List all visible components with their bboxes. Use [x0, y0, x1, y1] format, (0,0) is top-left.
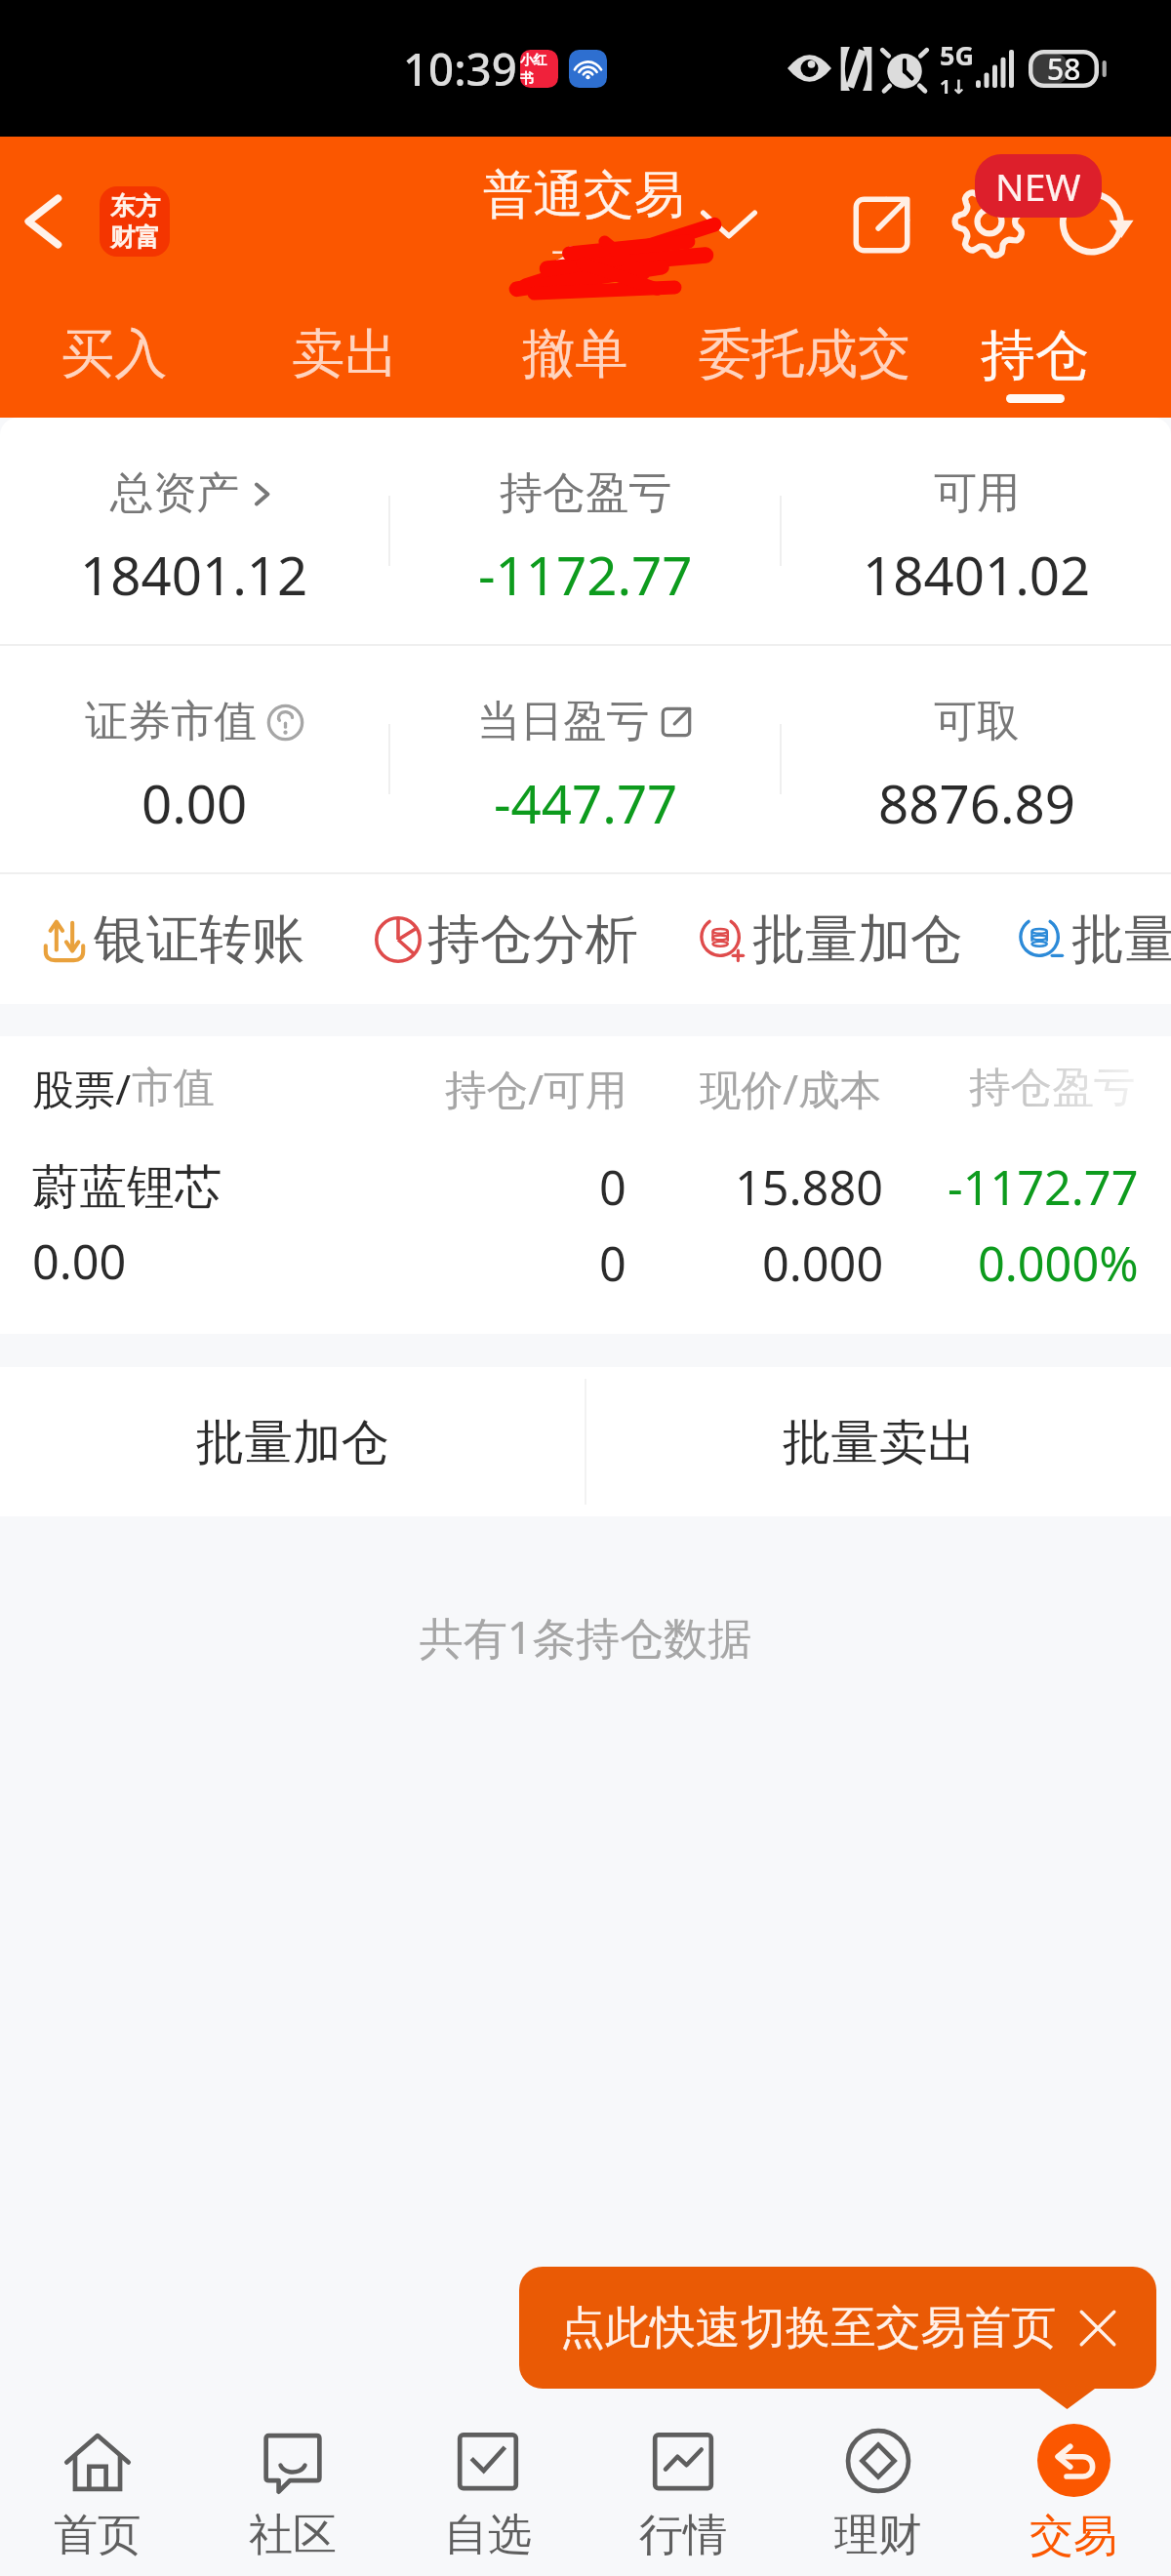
button[interactable]: 首页 [0, 2412, 195, 2576]
staticText: 首页 [54, 2508, 141, 2563]
staticText: 15.880 [735, 1154, 884, 1219]
button[interactable]: 证券市值 [0, 646, 388, 872]
staticText: 持仓分析 [427, 906, 638, 973]
button[interactable]: 批量卖出 [586, 1367, 1171, 1516]
button[interactable]: Open in new window [828, 172, 934, 277]
staticText: 东方 [110, 190, 160, 221]
staticText: 股票/ [32, 1060, 132, 1116]
staticText: 当日盈亏 [477, 695, 650, 749]
button[interactable]: 买入 [0, 321, 229, 421]
staticText: 批量卖出 [783, 1412, 976, 1472]
button[interactable]: 撤单 [460, 321, 690, 421]
button[interactable]: 批量加仓 [0, 1367, 585, 1516]
staticText: 0 [599, 1230, 626, 1295]
staticText: 财富 [110, 221, 160, 253]
button[interactable]: 批量加仓 [700, 906, 963, 973]
button[interactable]: East Money logo [100, 186, 170, 257]
staticText: 18401.02 [863, 539, 1091, 611]
staticText: 8876.89 [878, 767, 1075, 839]
button[interactable]: 持仓分析 [375, 906, 638, 973]
staticText: 普通交易 [483, 163, 685, 226]
button[interactable]: 社区 [195, 2412, 390, 2576]
staticText: 点此快速切换至交易首页 [560, 2300, 1057, 2356]
staticText: 10:39 [403, 38, 517, 99]
button[interactable]: Settings [937, 169, 1042, 274]
staticText: 0 [599, 1154, 626, 1219]
staticText: 5G [940, 37, 974, 73]
staticText: 行情 [639, 2508, 727, 2563]
button[interactable]: 持仓 [920, 321, 1151, 421]
staticText: 持仓 [981, 321, 1090, 389]
staticText: 李4 [550, 235, 618, 293]
staticText: 可取 [934, 695, 1021, 749]
staticText: 0.000% [978, 1230, 1139, 1295]
staticText: -1172.77 [948, 1154, 1139, 1219]
staticText: 共有1条持仓数据 [0, 1607, 1171, 1667]
staticText: 理财 [834, 2508, 922, 2563]
staticText: 买入 [61, 321, 168, 387]
button[interactable]: 普通交易 [483, 163, 685, 293]
staticText: 0.00 [141, 767, 248, 839]
staticText: 社区 [249, 2508, 337, 2563]
staticText: 小红书 [520, 52, 558, 87]
button[interactable]: 持仓盈亏 [390, 418, 780, 644]
staticText: 58 [1047, 49, 1081, 89]
staticText: 撤单 [522, 321, 628, 387]
staticText: 卖出 [292, 321, 398, 387]
staticText: 持仓盈亏 [969, 1062, 1136, 1114]
staticText: 市值 [132, 1062, 216, 1114]
button[interactable]: 可取 [782, 646, 1171, 872]
staticText: -447.77 [494, 767, 678, 839]
staticText: 证券市值 [85, 695, 258, 749]
button[interactable]: 批量加仓 [1019, 906, 1171, 973]
staticText: 0.000 [762, 1230, 884, 1295]
staticText: -1172.77 [478, 539, 693, 611]
staticText: 批量加仓 [1071, 906, 1171, 973]
staticText: 批量加仓 [752, 906, 963, 973]
staticText: 委托成交 [699, 321, 911, 387]
button[interactable]: 蔚蓝锂芯 [0, 1139, 1171, 1310]
button[interactable]: 理财 [781, 2412, 976, 2576]
other: Close tip [1077, 2308, 1118, 2349]
button[interactable]: 自选 [390, 2412, 585, 2576]
button[interactable]: 卖出 [229, 321, 460, 421]
button[interactable]: 当日盈亏 [390, 646, 780, 872]
button[interactable]: 行情 [585, 2412, 781, 2576]
staticText: 持仓盈亏 [500, 466, 672, 521]
staticText: 自选 [444, 2508, 532, 2563]
button[interactable]: 委托成交 [690, 321, 920, 421]
staticText: 现价/成本 [700, 1060, 882, 1116]
button[interactable]: 交易 [976, 2412, 1171, 2576]
button[interactable]: 可用 [782, 418, 1171, 644]
staticText: 批量加仓 [196, 1412, 389, 1472]
staticText: 银证转账 [94, 906, 304, 973]
button[interactable]: 点此快速切换至交易首页 [519, 2267, 1156, 2389]
staticText: 0.00 [32, 1228, 127, 1293]
button[interactable]: Refresh [1042, 169, 1148, 274]
staticText: 可用 [934, 466, 1021, 521]
button[interactable]: 总资产 [0, 418, 388, 644]
staticText: 1↓ [940, 73, 967, 100]
staticText: 蔚蓝锂芯 [32, 1157, 222, 1217]
staticText: 交易 [1030, 2509, 1117, 2564]
button[interactable]: 银证转账 [41, 906, 304, 973]
button[interactable]: Back [0, 172, 100, 271]
staticText: 总资产 [110, 466, 240, 521]
staticText: 18401.12 [80, 539, 308, 611]
staticText: 持仓/可用 [445, 1060, 627, 1116]
staticText: NEW [995, 160, 1081, 212]
